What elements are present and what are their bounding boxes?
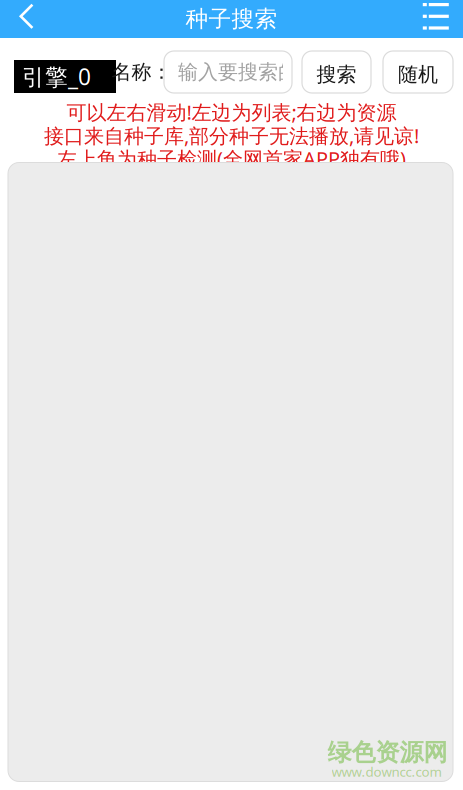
- staticText: 引擎_0: [22, 61, 91, 91]
- button[interactable]: 引擎_0: [14, 60, 116, 93]
- staticText: 绿色资源网: [327, 738, 447, 767]
- staticText: 接口来自种子库,部分种子无法播放,请见谅!: [44, 122, 419, 149]
- staticText: 左上角为种子检测(全网首家APP独有哦): [57, 145, 406, 172]
- button[interactable]: 随机: [383, 51, 453, 93]
- staticText: 种子搜索: [185, 5, 277, 33]
- staticText: 可以左右滑动!左边为列表;右边为资源: [66, 99, 396, 125]
- staticText: 随机: [398, 62, 438, 87]
- staticText: 搜索: [316, 62, 356, 87]
- button[interactable]: 搜索: [302, 51, 371, 93]
- staticText: www.downcc.com: [331, 763, 441, 780]
- staticText: 输入要搜索的: [178, 60, 298, 84]
- staticText: 名称：: [111, 60, 171, 84]
- button[interactable]: 菜单: [410, 0, 462, 35]
- button[interactable]: 返回: [1, 0, 53, 35]
